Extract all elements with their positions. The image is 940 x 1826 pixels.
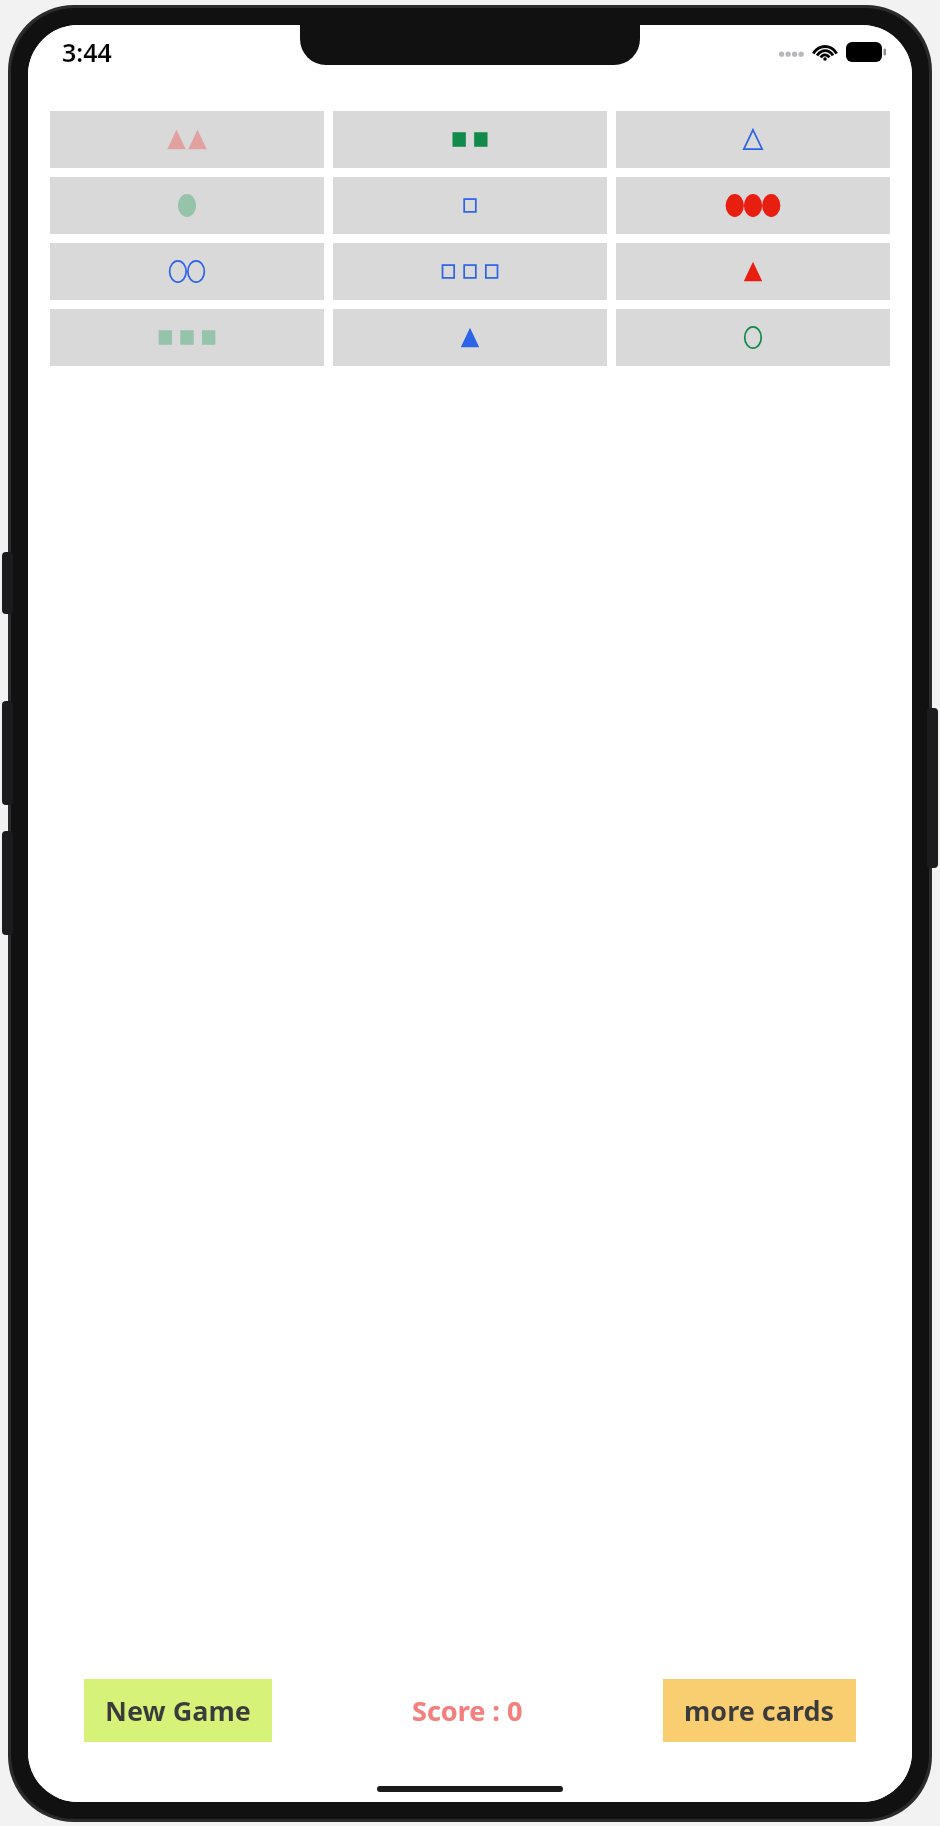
staticText: New Game — [105, 1692, 251, 1729]
button[interactable]: Set card — [50, 309, 324, 366]
button[interactable]: New Game — [84, 1679, 272, 1742]
button[interactable]: Set card — [50, 111, 324, 168]
button[interactable]: Set card — [333, 309, 607, 366]
staticText: more cards — [684, 1692, 835, 1729]
button[interactable]: Set card — [616, 177, 890, 234]
button[interactable]: Set card — [333, 111, 607, 168]
button[interactable]: Set card — [333, 177, 607, 234]
button[interactable]: Set card — [50, 243, 324, 300]
staticText: 3:44 — [62, 35, 112, 69]
button[interactable]: more cards — [663, 1679, 856, 1742]
staticText: Score : 0 — [412, 1692, 523, 1729]
button[interactable]: Set card — [616, 111, 890, 168]
button[interactable]: Set card — [616, 243, 890, 300]
button[interactable]: Set card — [50, 177, 324, 234]
button[interactable]: Score : 0 — [406, 1679, 529, 1742]
button[interactable]: Set card — [616, 309, 890, 366]
button[interactable]: Set card — [333, 243, 607, 300]
